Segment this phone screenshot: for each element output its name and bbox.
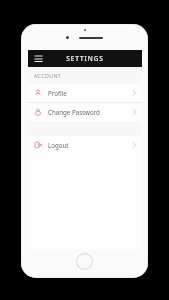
staticText: Profile (48, 89, 67, 97)
staticText: ACCOUNT (34, 72, 62, 79)
button[interactable]: Change Password (28, 103, 142, 121)
staticText: SETTINGS (66, 54, 104, 63)
button[interactable]: Profile (28, 84, 142, 102)
button[interactable]: Logout (28, 136, 142, 154)
staticText: Logout (48, 141, 69, 149)
button[interactable]: Open navigation menu (33, 53, 44, 64)
staticText: Change Password (48, 108, 100, 116)
